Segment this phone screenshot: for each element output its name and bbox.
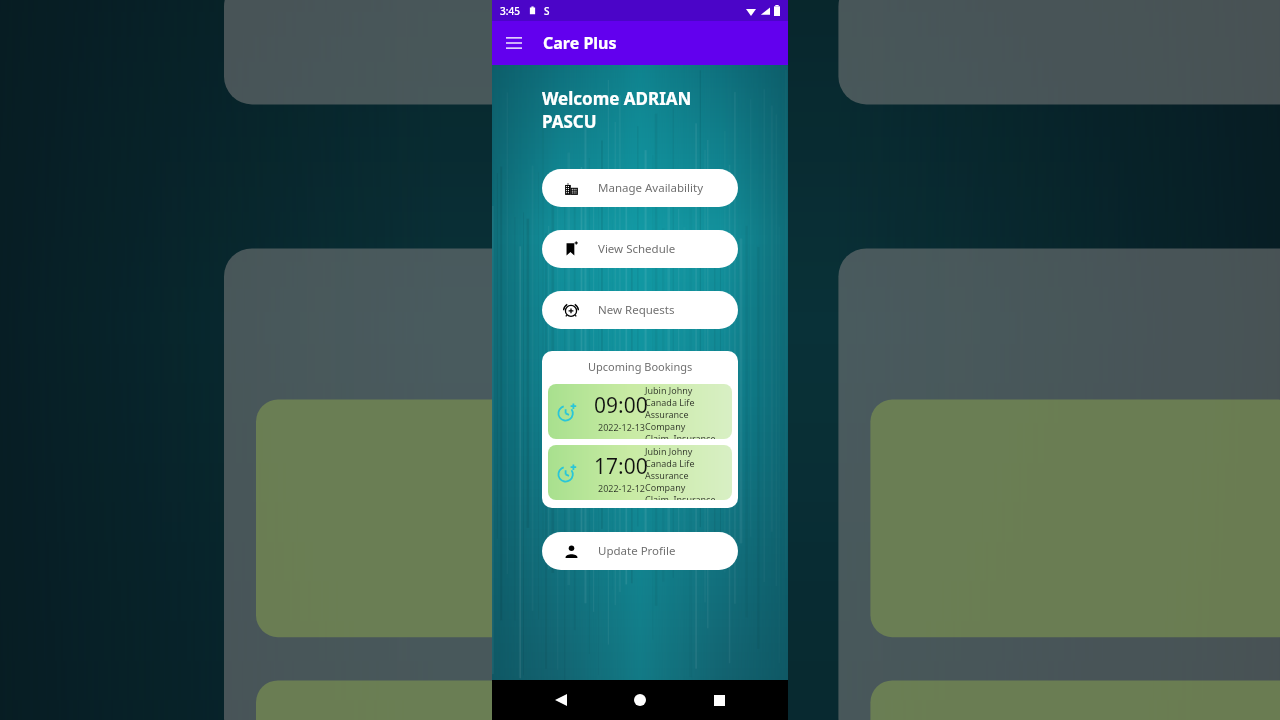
staticText: Assurance (645, 469, 689, 481)
staticText: 3:45 (500, 4, 520, 18)
button[interactable]: View Schedule (542, 230, 738, 268)
staticText: Update Profile (598, 543, 676, 559)
staticText: Claim Insurance (645, 432, 716, 439)
staticText: Jubin Johny (645, 445, 693, 457)
staticText: Assurance (645, 408, 689, 420)
staticText: Manage Availability (598, 180, 704, 196)
button[interactable]: Update Profile (542, 532, 738, 570)
staticText: Care Plus (543, 32, 617, 54)
button[interactable]: New Requests (542, 291, 738, 329)
button[interactable]: Recent apps (702, 683, 736, 717)
staticText: 17:00 (594, 452, 648, 481)
button[interactable]: Manage Availability (542, 169, 738, 207)
staticText: Claim Insurance (645, 493, 716, 500)
button[interactable]: Back (544, 683, 578, 717)
staticText: 09:00 (594, 391, 648, 420)
staticText: Canada Life (645, 396, 695, 408)
staticText: Company (645, 481, 686, 493)
staticText: Upcoming Bookings (588, 359, 693, 374)
staticText: 2022-12-13 (598, 421, 645, 433)
staticText: Welcome ADRIAN PASCU (542, 87, 738, 133)
button[interactable]: Home (623, 683, 657, 717)
staticText: Jubin Johny (645, 384, 693, 396)
button[interactable]: 17:00 (548, 445, 732, 500)
button[interactable]: Open navigation menu (492, 21, 536, 65)
staticText: 2022-12-12 (598, 482, 645, 494)
staticText: New Requests (598, 302, 675, 318)
staticText: View Schedule (598, 241, 676, 257)
staticText: S (544, 4, 550, 18)
staticText: Company (645, 420, 686, 432)
button[interactable]: 09:00 (548, 384, 732, 439)
staticText: Canada Life (645, 457, 695, 469)
